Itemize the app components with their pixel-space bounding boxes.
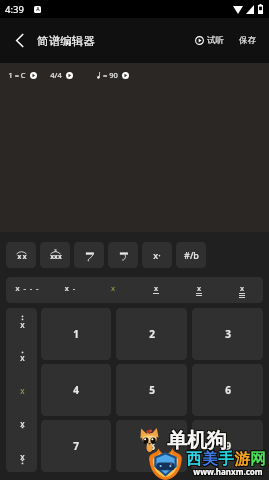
button[interactable]: Eighth rest <box>108 242 138 268</box>
staticText: 9 <box>225 439 231 453</box>
staticText: 西 <box>186 449 202 469</box>
staticText: www.hanxm.com <box>194 466 264 477</box>
staticText: 游 <box>234 450 250 470</box>
button[interactable]: 6 <box>192 364 263 416</box>
button[interactable]: Note duration x - <box>48 277 91 303</box>
button[interactable]: Back <box>8 29 31 52</box>
staticText: 美 <box>202 448 218 468</box>
staticText: 游 <box>235 448 251 468</box>
staticText: 游 <box>233 450 249 470</box>
staticText: 游 <box>233 449 249 469</box>
staticText: 单机狗 <box>168 428 228 453</box>
staticText: 单机狗 <box>166 427 226 452</box>
staticText: 4/4 <box>50 70 62 80</box>
button[interactable]: 1 = C <box>6 67 39 83</box>
staticText: 网 <box>249 449 265 469</box>
staticText: A <box>36 6 40 13</box>
button[interactable]: 4/4 <box>48 67 75 83</box>
button[interactable]: 3 <box>192 308 263 360</box>
button[interactable]: x <box>6 439 37 472</box>
staticText: #/b <box>184 249 199 261</box>
staticText: 简谱编辑器 <box>37 34 95 48</box>
staticText: x <box>20 418 25 429</box>
staticText: 网 <box>250 448 266 468</box>
staticText: 单机狗 <box>167 429 227 454</box>
staticText: www.hanxm.com <box>192 467 262 478</box>
button[interactable]: x <box>6 340 37 373</box>
button[interactable]: = 90 <box>95 67 131 83</box>
staticText: 单机狗 <box>167 427 227 452</box>
staticText: 单机狗 <box>168 427 228 452</box>
button[interactable]: 2 <box>116 308 187 360</box>
staticText: 西 <box>185 448 201 468</box>
button[interactable]: 9 <box>192 420 263 472</box>
staticText: 美 <box>201 450 217 470</box>
staticText: x <box>141 283 171 293</box>
staticText: 美 <box>202 450 218 470</box>
button[interactable]: Triplet <box>40 242 70 268</box>
staticText: 6 <box>225 383 231 397</box>
staticText: 手 <box>217 449 233 469</box>
button[interactable]: Note duration x <box>177 277 220 303</box>
button[interactable]: 试听 <box>193 30 226 51</box>
staticText: 手 <box>218 448 234 468</box>
button[interactable]: x <box>6 308 37 340</box>
staticText: x <box>20 352 25 363</box>
button[interactable]: Note duration x - - - <box>6 277 48 303</box>
staticText: 3 <box>54 248 57 253</box>
staticText: 5 <box>149 383 155 397</box>
staticText: 2 <box>149 327 155 341</box>
staticText: x <box>184 283 214 293</box>
staticText: 西 <box>187 450 203 470</box>
staticText: 单机狗 <box>166 428 226 453</box>
staticText: 游 <box>234 449 250 469</box>
staticText: 游 <box>235 449 251 469</box>
staticText: x· <box>153 249 161 261</box>
staticText: 手 <box>218 450 234 470</box>
button[interactable]: Note duration x <box>134 277 177 303</box>
staticText: 西 <box>186 448 202 468</box>
staticText: 西 <box>185 449 201 469</box>
staticText: www.hanxm.com <box>194 465 264 476</box>
staticText: 美 <box>201 448 217 468</box>
button[interactable]: 4 <box>41 364 111 416</box>
button[interactable]: Sharp or flat <box>176 242 206 268</box>
staticText: x <box>20 385 25 396</box>
staticText: 1 = C <box>8 70 26 80</box>
staticText: 网 <box>250 450 266 470</box>
staticText: 网 <box>251 449 267 469</box>
button[interactable]: Dotted note <box>142 242 172 268</box>
staticText: www.hanxm.com <box>193 465 263 476</box>
staticText: 美 <box>203 450 219 470</box>
staticText: 西 <box>187 448 203 468</box>
staticText: 西 <box>185 450 201 470</box>
staticText: www.hanxm.com <box>193 467 263 478</box>
staticText: x <box>20 451 25 462</box>
button[interactable]: 保存 <box>237 30 258 51</box>
staticText: 8 <box>149 439 155 453</box>
button[interactable]: 7 <box>41 420 111 472</box>
staticText: = 90 <box>103 70 118 80</box>
staticText: xxx <box>50 252 62 261</box>
staticText: www.hanxm.com <box>194 467 264 478</box>
button[interactable]: Tie two notes <box>6 242 36 268</box>
button[interactable]: Note duration x <box>220 277 263 303</box>
staticText: 手 <box>218 449 234 469</box>
staticText: 美 <box>203 449 219 469</box>
button[interactable]: x <box>6 406 37 439</box>
button[interactable]: Quarter rest <box>74 242 104 268</box>
staticText: 3 <box>225 327 231 341</box>
button[interactable]: x <box>6 373 37 406</box>
staticText: 4 <box>73 383 79 397</box>
staticText: 网 <box>250 449 266 469</box>
button[interactable]: 1 <box>41 308 111 360</box>
button[interactable]: Note duration x <box>91 277 134 303</box>
staticText: 4:39 <box>5 3 24 16</box>
staticText: x <box>98 283 128 293</box>
staticText: 单机狗 <box>168 429 228 454</box>
button[interactable]: 8 <box>116 420 187 472</box>
button[interactable]: 5 <box>116 364 187 416</box>
staticText: 美 <box>203 448 219 468</box>
staticText: www.hanxm.com <box>192 466 262 477</box>
staticText: 手 <box>219 450 235 470</box>
